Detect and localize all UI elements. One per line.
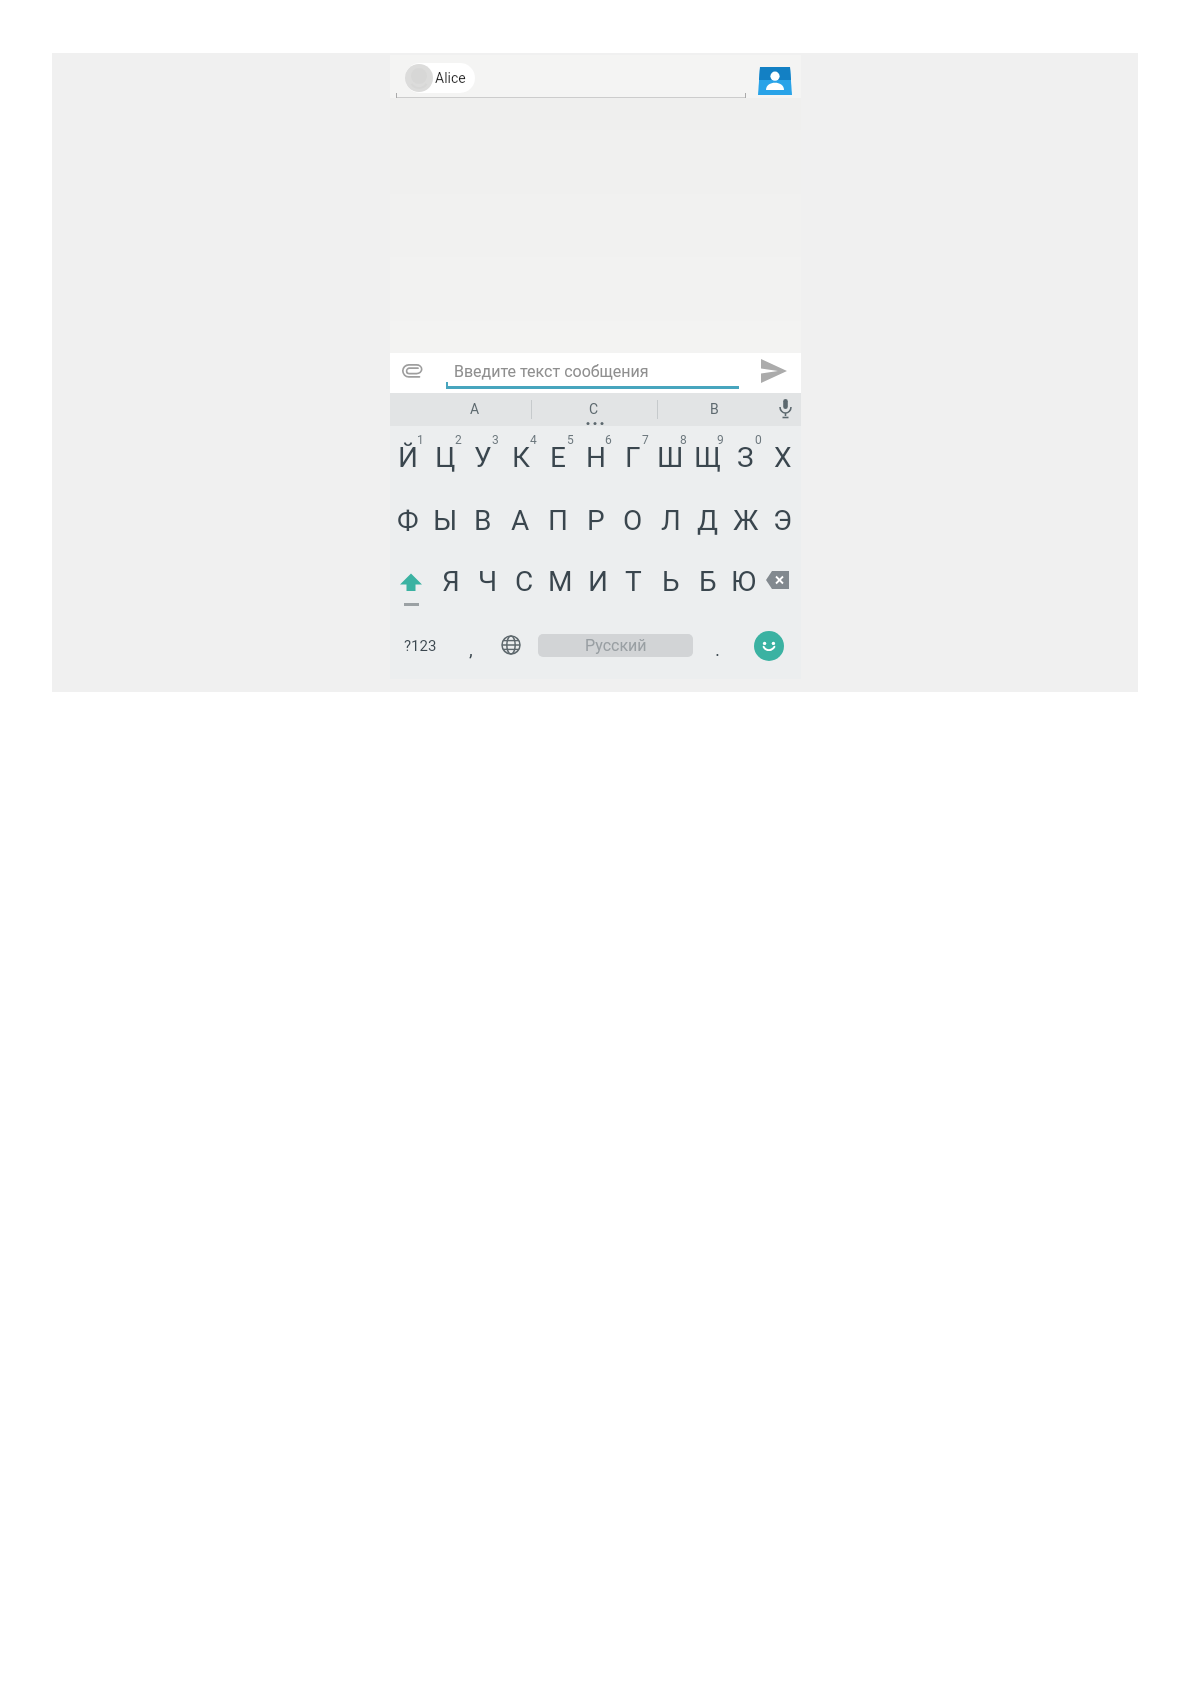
staticText: Э bbox=[773, 504, 792, 537]
button[interactable]: Ч bbox=[469, 550, 506, 613]
button[interactable]: Ц bbox=[427, 426, 464, 489]
button[interactable]: Alice bbox=[405, 63, 475, 93]
staticText: ?123 bbox=[404, 637, 437, 655]
staticText: Р bbox=[587, 504, 605, 537]
staticText: 6 bbox=[605, 433, 612, 447]
staticText: Ф bbox=[397, 504, 419, 537]
staticText: И bbox=[588, 565, 608, 598]
button[interactable] bbox=[394, 571, 430, 611]
staticText: Й bbox=[398, 441, 418, 474]
staticText: У bbox=[474, 441, 492, 474]
staticText: Введите текст сообщения bbox=[454, 362, 649, 381]
staticText: Ю bbox=[731, 565, 757, 598]
staticText: 5 bbox=[567, 433, 574, 447]
button[interactable]: А bbox=[502, 489, 539, 552]
staticText: С bbox=[515, 565, 534, 598]
staticText: Я bbox=[442, 565, 460, 598]
staticText: Ц bbox=[435, 441, 456, 474]
button[interactable] bbox=[758, 66, 792, 96]
staticText: 2 bbox=[455, 433, 462, 447]
staticText: Щ bbox=[694, 441, 722, 474]
button[interactable]: У bbox=[464, 426, 501, 489]
staticText: К bbox=[512, 441, 530, 474]
staticText: Е bbox=[550, 441, 566, 474]
staticText: 0 bbox=[755, 433, 762, 447]
staticText: 7 bbox=[642, 433, 649, 447]
button[interactable]: Р bbox=[577, 489, 614, 552]
button[interactable]: Е bbox=[539, 426, 576, 489]
staticText: А bbox=[511, 504, 530, 537]
staticText: Русский bbox=[585, 636, 647, 655]
staticText: Д bbox=[697, 504, 719, 537]
staticText: А bbox=[470, 401, 480, 417]
staticText: М bbox=[548, 565, 573, 598]
staticText: В bbox=[710, 401, 719, 417]
button[interactable]: Э bbox=[764, 489, 801, 552]
staticText: Ж bbox=[733, 504, 759, 537]
button[interactable]: С bbox=[506, 550, 543, 613]
staticText: Ч bbox=[478, 565, 498, 598]
button[interactable] bbox=[758, 357, 790, 387]
button[interactable] bbox=[764, 568, 792, 592]
button[interactable]: Б bbox=[689, 550, 726, 613]
button[interactable]: Русский bbox=[538, 634, 693, 657]
button[interactable]: Щ bbox=[689, 426, 726, 489]
button[interactable]: З bbox=[727, 426, 764, 489]
staticText: Alice bbox=[435, 70, 466, 86]
button[interactable]: Х bbox=[764, 426, 801, 489]
button[interactable]: Л bbox=[652, 489, 689, 552]
staticText: 8 bbox=[680, 433, 687, 447]
button[interactable]: В bbox=[464, 489, 501, 552]
button[interactable] bbox=[754, 631, 784, 661]
button[interactable]: Ш bbox=[652, 426, 689, 489]
staticText: Ы bbox=[433, 504, 458, 537]
staticText: С bbox=[589, 401, 599, 417]
button[interactable]: Т bbox=[615, 550, 652, 613]
staticText: Б bbox=[699, 565, 717, 598]
button[interactable]: Ф bbox=[389, 489, 426, 552]
staticText: Н bbox=[586, 441, 606, 474]
button[interactable]: К bbox=[502, 426, 539, 489]
staticText: 4 bbox=[530, 433, 537, 447]
staticText: Т bbox=[625, 565, 642, 598]
button[interactable]: Д bbox=[689, 489, 726, 552]
staticText: Л bbox=[661, 504, 681, 537]
button[interactable]: М bbox=[542, 550, 579, 613]
button[interactable] bbox=[500, 634, 522, 656]
staticText: Ш bbox=[657, 441, 684, 474]
button[interactable]: ?123 bbox=[398, 624, 442, 668]
staticText: Х bbox=[774, 441, 792, 474]
staticText: , bbox=[469, 638, 473, 660]
staticText: 1 bbox=[417, 433, 424, 447]
staticText: Г bbox=[625, 441, 641, 474]
button[interactable]: О bbox=[614, 489, 651, 552]
button[interactable]: Я bbox=[432, 550, 469, 613]
button[interactable]: Ю bbox=[725, 550, 762, 613]
staticText: В bbox=[474, 504, 492, 537]
button[interactable]: Ы bbox=[427, 489, 464, 552]
staticText: П bbox=[548, 504, 568, 537]
staticText: . bbox=[715, 638, 721, 660]
button[interactable]: Н bbox=[577, 426, 614, 489]
staticText: 9 bbox=[717, 433, 724, 447]
button[interactable]: Й bbox=[389, 426, 426, 489]
button[interactable]: Ж bbox=[727, 489, 764, 552]
button[interactable]: Ь bbox=[652, 550, 689, 613]
staticText: О bbox=[623, 504, 643, 537]
staticText: Ь bbox=[662, 565, 680, 598]
button[interactable]: Г bbox=[614, 426, 651, 489]
staticText: 3 bbox=[492, 433, 499, 447]
button[interactable]: П bbox=[539, 489, 576, 552]
button[interactable]: И bbox=[579, 550, 616, 613]
staticText: З bbox=[737, 441, 754, 474]
